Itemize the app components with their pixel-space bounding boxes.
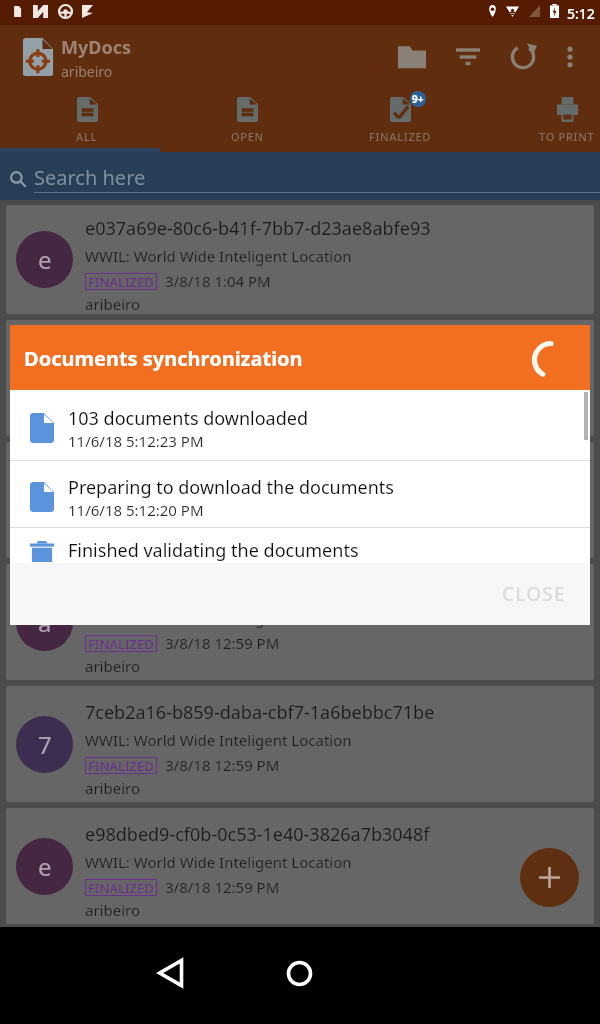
staticText: 11/6/18 5:12:23 PM: [68, 431, 204, 451]
staticText: FINALIZED: [369, 129, 431, 144]
button[interactable]: e: [6, 205, 594, 314]
staticText: ALL: [76, 129, 98, 144]
staticText: WWIL: World Wide Inteligent Location: [85, 608, 352, 628]
button[interactable]: TO PRINT: [492, 88, 600, 152]
staticText: Documents synchronization: [24, 345, 303, 372]
staticText: WWIL: World Wide Inteligent Location: [85, 364, 352, 384]
staticText: FINALIZED: [88, 879, 154, 896]
staticText: aribeiro: [85, 412, 141, 432]
staticText: e037a69e-80c6-b41f-7bb7-d23ae8abfe93: [85, 216, 431, 241]
staticText: TO PRINT: [539, 129, 595, 144]
staticText: WWIL: World Wide Inteligent Location: [85, 852, 352, 872]
staticText: WWIL: World Wide Inteligent Location: [85, 246, 352, 266]
staticText: 3/8/18 12:59 PM: [165, 511, 280, 531]
staticText: e98dbed9-cf0b-0c53-1e40-3826a7b3048f: [85, 822, 430, 847]
staticText: aribeiro: [85, 778, 141, 798]
staticText: OPEN: [231, 129, 264, 144]
staticText: aribeiro: [61, 62, 113, 81]
button[interactable]: Back: [144, 945, 200, 1001]
button[interactable]: 9+: [325, 88, 475, 152]
staticText: Preparing to download the documents: [68, 475, 394, 500]
staticText: aribeiro: [85, 656, 141, 676]
staticText: WWIL: World Wide Inteligent Location: [85, 486, 352, 506]
button[interactable]: Add document: [520, 848, 579, 907]
staticText: aribeiro: [85, 534, 141, 554]
button[interactable]: e: [6, 442, 594, 558]
staticText: FINALIZED: [88, 757, 154, 774]
staticText: 3/8/18 12:59 PM: [165, 755, 280, 775]
staticText: aribeiro: [85, 294, 141, 314]
staticText: MyDocs: [61, 35, 132, 60]
staticText: e: [38, 484, 52, 517]
staticText: aribeiro: [85, 900, 141, 920]
staticText: FINALIZED: [88, 273, 154, 290]
staticText: 11/6/18 5:12:20 PM: [68, 500, 204, 520]
staticText: WWIL: World Wide Inteligent Location: [85, 730, 352, 750]
staticText: 9+: [412, 92, 424, 106]
staticText: 7: [38, 728, 52, 761]
staticText: 4: [38, 362, 52, 395]
staticText: 3/8/18 12:59 PM: [165, 633, 280, 653]
staticText: Finished validating the documents: [68, 538, 359, 561]
staticText: 5:12: [567, 4, 595, 23]
button[interactable]: Refresh: [495, 29, 551, 85]
staticText: e1ca2f18-aa3c-4d1b-9e77-7c8d1a6b2e55: [85, 456, 431, 481]
button[interactable]: e: [6, 808, 594, 924]
staticText: Search here: [34, 164, 146, 191]
staticText: e: [38, 850, 52, 883]
staticText: 3/8/18 12:59 PM: [165, 877, 280, 897]
button[interactable]: CLOSE: [488, 571, 580, 617]
button[interactable]: Filter: [440, 29, 496, 85]
staticText: 3/8/18 1:04 PM: [165, 271, 271, 291]
staticText: 43bb1ef9-9e0d-4a01-bd6b-1b1c8f0c3d21: [85, 334, 432, 359]
staticText: 7ceb2a16-b859-daba-cbf7-1a6bebbc71be: [85, 700, 435, 725]
staticText: 103 documents downloaded: [68, 406, 308, 431]
button[interactable]: OPEN: [172, 88, 322, 152]
button[interactable]: a: [6, 564, 594, 680]
staticText: CLOSE: [502, 581, 566, 607]
button[interactable]: Home: [271, 945, 327, 1001]
staticText: a: [38, 606, 52, 639]
button[interactable]: 7: [6, 686, 594, 802]
staticText: 3/8/18 12:59 PM: [165, 389, 280, 409]
staticText: FINALIZED: [88, 513, 154, 530]
button[interactable]: ALL: [12, 88, 162, 152]
staticText: FINALIZED: [88, 635, 154, 652]
button[interactable]: More options: [542, 29, 598, 85]
button[interactable]: 4: [6, 320, 594, 436]
button[interactable]: Folder: [384, 29, 440, 85]
staticText: e: [38, 243, 52, 276]
